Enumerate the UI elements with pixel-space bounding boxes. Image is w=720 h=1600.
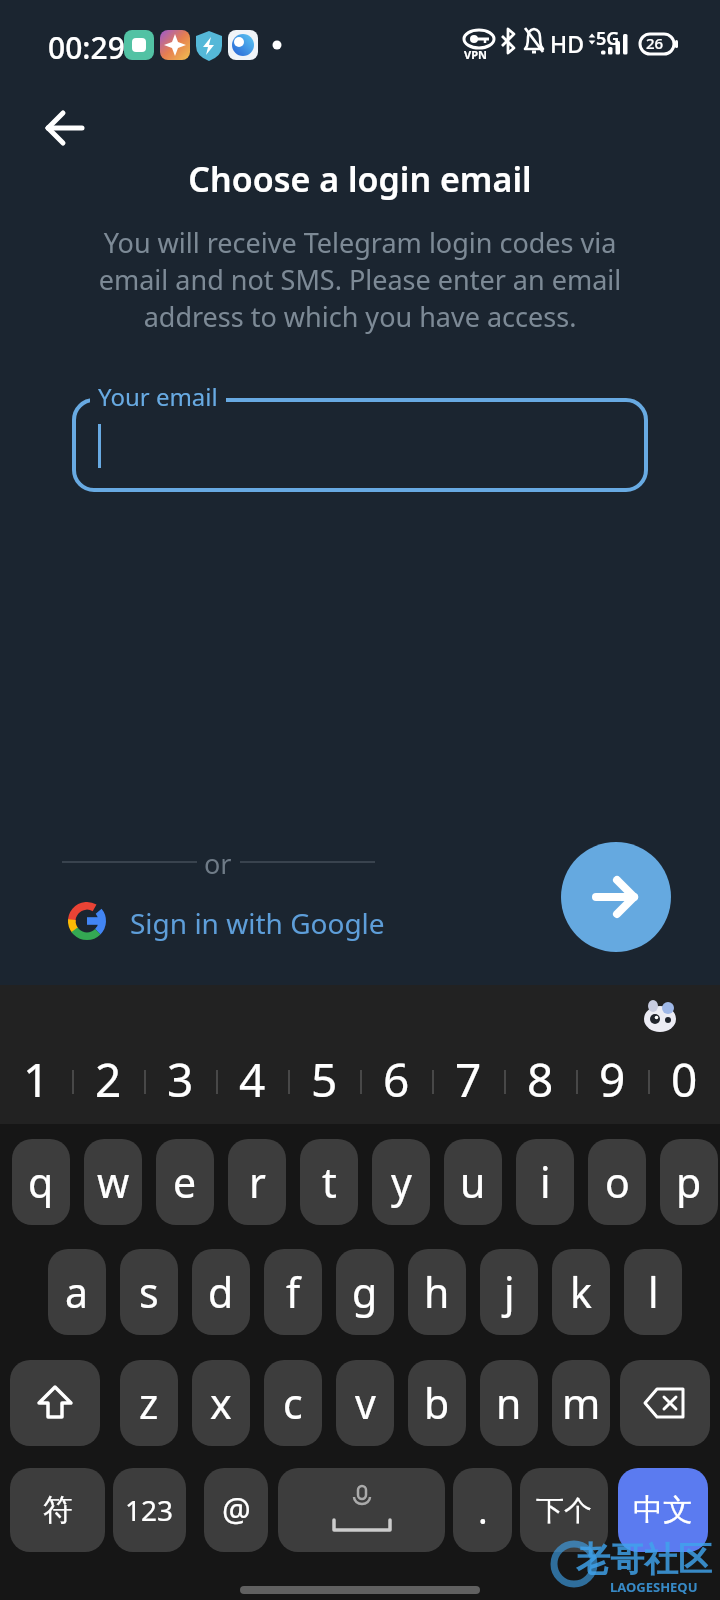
button[interactable]: 4: [216, 1045, 288, 1113]
staticText: Your email: [98, 380, 218, 413]
staticText: 2: [95, 1048, 122, 1111]
button[interactable]: 7: [432, 1045, 504, 1113]
staticText: x: [210, 1375, 232, 1431]
staticText: u: [460, 1154, 486, 1210]
button[interactable]: i: [516, 1139, 574, 1225]
button[interactable]: 123: [113, 1468, 186, 1552]
staticText: b: [424, 1375, 450, 1431]
button[interactable]: a: [48, 1249, 106, 1335]
button[interactable]: b: [408, 1360, 466, 1446]
staticText: VPN: [464, 47, 487, 62]
button[interactable]: [72, 398, 648, 492]
button[interactable]: w: [84, 1139, 142, 1225]
staticText: Sign in with Google: [130, 904, 385, 942]
staticText: g: [352, 1264, 378, 1320]
button[interactable]: x: [192, 1360, 250, 1446]
button[interactable]: 5: [288, 1045, 360, 1113]
button[interactable]: 中文: [618, 1468, 708, 1552]
button[interactable]: [620, 1360, 710, 1446]
button[interactable]: h: [408, 1249, 466, 1335]
button[interactable]: l: [624, 1249, 682, 1335]
staticText: p: [676, 1154, 702, 1210]
staticText: 3: [167, 1048, 194, 1111]
staticText: h: [424, 1264, 450, 1320]
button[interactable]: [561, 842, 671, 952]
button[interactable]: 6: [360, 1045, 432, 1113]
staticText: 1: [23, 1048, 50, 1111]
button[interactable]: o: [588, 1139, 646, 1225]
staticText: j: [504, 1264, 515, 1320]
staticText: 5: [311, 1048, 338, 1111]
staticText: e: [173, 1154, 197, 1210]
staticText: c: [283, 1375, 303, 1431]
staticText: w: [97, 1154, 130, 1210]
staticText: 9: [599, 1048, 626, 1111]
button[interactable]: k: [552, 1249, 610, 1335]
button[interactable]: 9: [576, 1045, 648, 1113]
button[interactable]: t: [300, 1139, 358, 1225]
staticText: k: [570, 1264, 592, 1320]
button[interactable]: q: [12, 1139, 70, 1225]
staticText: Choose a login email: [0, 156, 720, 202]
staticText: l: [648, 1264, 659, 1320]
button[interactable]: 1: [0, 1045, 72, 1113]
button[interactable]: 符: [10, 1468, 105, 1552]
staticText: v: [355, 1375, 376, 1431]
staticText: f: [286, 1264, 301, 1320]
button[interactable]: m: [552, 1360, 610, 1446]
button[interactable]: [10, 1360, 100, 1446]
button[interactable]: e: [156, 1139, 214, 1225]
button[interactable]: .: [453, 1468, 512, 1552]
staticText: n: [496, 1375, 522, 1431]
staticText: @: [222, 1488, 251, 1532]
button[interactable]: y: [372, 1139, 430, 1225]
button[interactable]: z: [120, 1360, 178, 1446]
button[interactable]: p: [660, 1139, 718, 1225]
staticText: 00:29: [48, 27, 125, 68]
staticText: 7: [455, 1048, 482, 1111]
staticText: y: [391, 1154, 412, 1210]
button[interactable]: d: [192, 1249, 250, 1335]
button[interactable]: [36, 100, 92, 156]
staticText: 26: [646, 33, 664, 53]
button[interactable]: 8: [504, 1045, 576, 1113]
staticText: t: [322, 1154, 337, 1210]
button[interactable]: u: [444, 1139, 502, 1225]
staticText: 5G: [596, 26, 620, 51]
button[interactable]: j: [480, 1249, 538, 1335]
button[interactable]: 下个: [520, 1468, 608, 1552]
staticText: s: [139, 1264, 159, 1320]
button[interactable]: g: [336, 1249, 394, 1335]
button[interactable]: 0: [648, 1045, 720, 1113]
button[interactable]: n: [480, 1360, 538, 1446]
staticText: You will receive Telegram login codes vi…: [0, 224, 720, 335]
staticText: 123: [125, 1491, 174, 1529]
staticText: z: [139, 1375, 159, 1431]
staticText: HD: [550, 28, 585, 59]
staticText: 4: [239, 1048, 266, 1111]
button[interactable]: c: [264, 1360, 322, 1446]
staticText: m: [562, 1375, 601, 1431]
staticText: 8: [527, 1048, 554, 1111]
staticText: 中文: [633, 1491, 693, 1529]
button[interactable]: 2: [72, 1045, 144, 1113]
button[interactable]: r: [228, 1139, 286, 1225]
button[interactable]: s: [120, 1249, 178, 1335]
staticText: a: [65, 1264, 89, 1320]
staticText: .: [478, 1486, 488, 1535]
staticText: q: [28, 1154, 54, 1210]
button[interactable]: Sign in with Google: [60, 890, 380, 950]
staticText: 老哥社区: [576, 1538, 712, 1581]
staticText: or: [204, 845, 232, 882]
button[interactable]: [278, 1468, 445, 1552]
staticText: o: [605, 1154, 630, 1210]
button[interactable]: f: [264, 1249, 322, 1335]
staticText: LAOGESHEQU: [610, 1578, 698, 1596]
button[interactable]: 3: [144, 1045, 216, 1113]
button[interactable]: v: [336, 1360, 394, 1446]
staticText: r: [249, 1154, 266, 1210]
staticText: i: [540, 1154, 551, 1210]
staticText: 0: [671, 1048, 698, 1111]
button[interactable]: @: [204, 1468, 268, 1552]
staticText: 6: [383, 1048, 410, 1111]
